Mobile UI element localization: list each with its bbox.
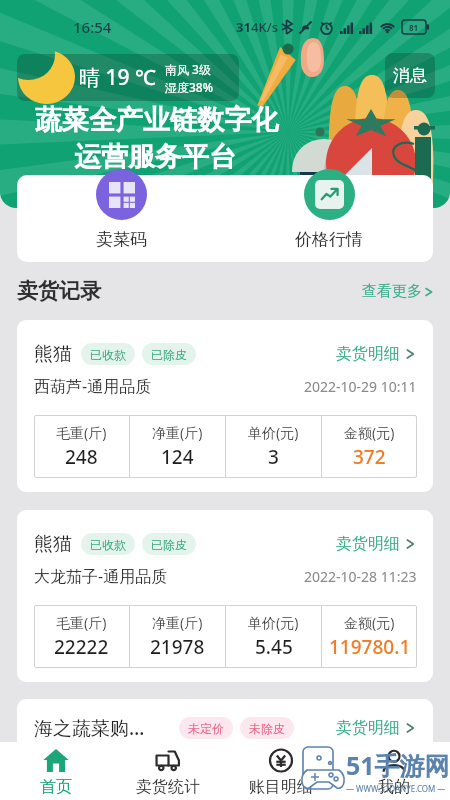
button[interactable]: 账目明细	[224, 748, 337, 800]
staticText: 22222	[54, 634, 109, 660]
button[interactable]: 海之蔬菜购…	[17, 699, 433, 800]
button[interactable]: 熊猫	[17, 320, 433, 492]
staticText: — WWW.51DANYE.COM —	[346, 783, 446, 794]
staticText: 查看更多	[362, 282, 422, 301]
button[interactable]: 卖菜码	[17, 169, 225, 256]
staticText: 3	[268, 444, 279, 470]
staticText: 卖货明细	[336, 344, 400, 364]
staticText: 372	[353, 444, 386, 470]
staticText: 124	[161, 444, 194, 470]
staticText: 单价(元)	[248, 423, 299, 442]
button[interactable]: 卖货明细	[336, 718, 417, 738]
staticText: 已收款	[90, 347, 126, 362]
staticText: 4K/s	[251, 18, 278, 36]
staticText: 晴 19 ℃	[79, 63, 156, 92]
staticText: 海之蔬菜购…	[34, 715, 145, 740]
button[interactable]: 我的	[337, 748, 450, 800]
staticText: 消息	[393, 65, 427, 86]
staticText: 我的	[378, 777, 410, 797]
staticText: 31	[236, 18, 251, 36]
staticText: 已除皮	[151, 537, 187, 552]
staticText: 南风 3级	[165, 61, 211, 77]
staticText: 毛重(斤)	[56, 613, 107, 632]
staticText: 51手游网	[346, 748, 450, 782]
staticText: 已收款	[90, 537, 126, 552]
button[interactable]: 价格行情	[225, 169, 433, 256]
button[interactable]: 卖货明细	[336, 344, 417, 364]
staticText: 账目明细	[249, 777, 313, 797]
staticText: 16:54	[73, 17, 112, 37]
staticText: 81	[409, 22, 419, 33]
button[interactable]: 熊猫	[17, 510, 433, 682]
staticText: 卖菜码	[96, 229, 147, 250]
staticText: 净重(斤)	[152, 613, 203, 632]
staticText: 248	[65, 444, 98, 470]
staticText: 西葫芦-通用品质	[34, 375, 152, 397]
staticText: 金额(元)	[344, 613, 395, 632]
staticText: 21978	[150, 634, 205, 660]
staticText: 首页	[40, 777, 72, 797]
staticText: 卖货明细	[336, 718, 400, 738]
staticText: 卖货明细	[336, 534, 400, 554]
button[interactable]: 消息	[385, 53, 435, 98]
staticText: 单价(元)	[248, 613, 299, 632]
staticText: 卖货统计	[136, 777, 200, 797]
staticText: 价格行情	[295, 229, 363, 250]
button[interactable]: 卖货明细	[336, 534, 417, 554]
staticText: 2022-10-28 11:23	[304, 567, 417, 586]
staticText: 湿度38%	[165, 79, 213, 95]
staticText: 净重(斤)	[152, 423, 203, 442]
staticText: 2022-10-29 10:11	[304, 377, 417, 396]
staticText: 蔬菜全产业链数字化	[35, 103, 278, 137]
button[interactable]: 卖货统计	[112, 748, 224, 800]
button[interactable]: 查看更多	[362, 282, 435, 301]
staticText: 熊猫	[34, 532, 72, 556]
staticText: 未定价	[188, 721, 224, 736]
staticText: 未除皮	[249, 721, 285, 736]
staticText: 卖货记录	[17, 278, 101, 304]
staticText: 金额(元)	[344, 423, 395, 442]
staticText: 大龙茄子-通用品质	[34, 565, 168, 587]
staticText: 5.45	[255, 634, 293, 660]
staticText: 熊猫	[34, 342, 72, 366]
button[interactable]: 首页	[0, 748, 112, 800]
staticText: 已除皮	[151, 347, 187, 362]
staticText: 毛重(斤)	[56, 423, 107, 442]
staticText: 运营服务平台	[74, 140, 236, 174]
staticText: 119780.1	[329, 634, 411, 660]
